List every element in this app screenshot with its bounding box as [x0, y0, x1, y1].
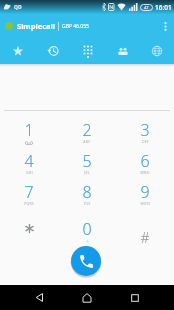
- button[interactable]: [123, 285, 147, 310]
- staticText: 2: [82, 119, 92, 141]
- button[interactable]: [105, 38, 140, 64]
- staticText: #: [140, 228, 150, 247]
- button[interactable]: 5: [58, 150, 116, 172]
- button[interactable]: 3: [116, 119, 174, 141]
- button[interactable]: #: [116, 218, 174, 240]
- button[interactable]: [75, 285, 99, 310]
- staticText: PQRS: [24, 201, 34, 206]
- button[interactable]: [35, 38, 70, 64]
- staticText: Simplecall: [17, 21, 55, 31]
- button[interactable]: [140, 38, 174, 64]
- staticText: 0: [82, 218, 92, 240]
- staticText: 47: [144, 5, 149, 10]
- button[interactable]: 6: [116, 150, 174, 172]
- staticText: JKL: [84, 170, 90, 175]
- button[interactable]: [0, 217, 58, 239]
- staticText: GHI: [26, 170, 33, 175]
- staticText: DEF: [142, 139, 149, 144]
- staticText: 3: [140, 119, 150, 141]
- staticText: 5: [82, 150, 92, 172]
- button[interactable]: 0: [58, 218, 116, 240]
- button[interactable]: [158, 19, 172, 33]
- button[interactable]: [70, 38, 105, 64]
- staticText: WXYZ: [140, 201, 151, 206]
- staticText: ABC: [83, 139, 91, 144]
- staticText: MNO: [140, 170, 150, 175]
- button[interactable]: 2: [58, 119, 116, 141]
- button[interactable]: 4: [0, 150, 58, 172]
- staticText: +: [86, 238, 89, 243]
- button[interactable]: 9: [116, 181, 174, 203]
- button[interactable]: [71, 246, 101, 276]
- staticText: TUV: [83, 201, 91, 206]
- staticText: 9: [140, 181, 150, 203]
- button[interactable]: 8: [58, 181, 116, 203]
- staticText: GBP 46.055: [62, 23, 89, 30]
- staticText: 8: [82, 181, 92, 203]
- staticText: 1: [24, 119, 34, 141]
- staticText: 16:01: [155, 3, 172, 12]
- button[interactable]: [0, 38, 35, 64]
- button[interactable]: 7: [0, 181, 58, 203]
- staticText: QD: [14, 4, 22, 11]
- staticText: 4: [24, 150, 34, 172]
- button[interactable]: [27, 285, 51, 310]
- button[interactable]: 1: [0, 119, 58, 141]
- staticText: 7: [24, 181, 34, 203]
- staticText: 6: [140, 150, 150, 172]
